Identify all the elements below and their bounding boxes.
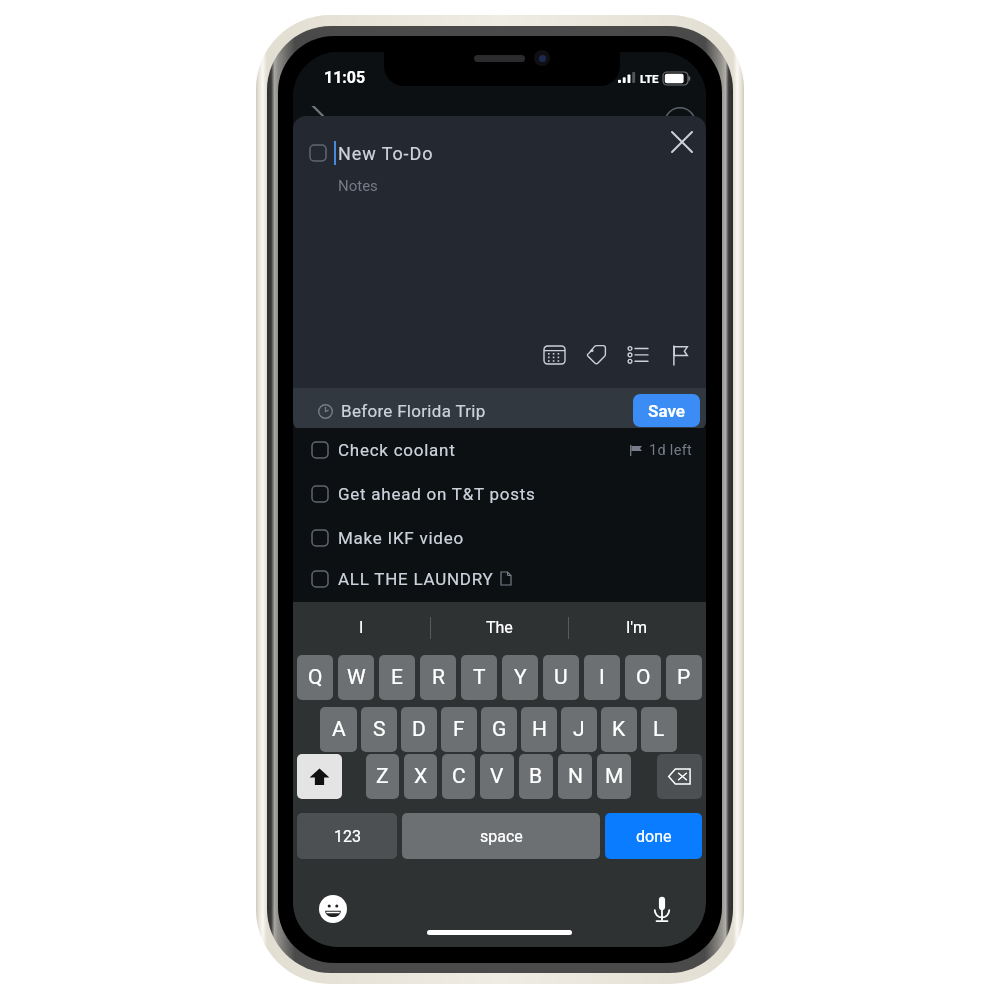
button[interactable]: N	[558, 754, 592, 799]
staticText: M	[605, 764, 624, 789]
staticText: I'm	[626, 618, 648, 637]
button[interactable]: Close	[662, 122, 702, 162]
button[interactable]: G	[481, 707, 517, 752]
staticText: O	[636, 665, 651, 690]
button[interactable]: Dictation	[647, 894, 677, 924]
button[interactable]: space	[402, 813, 600, 859]
button[interactable]: L	[641, 707, 677, 752]
button[interactable]: U	[543, 655, 579, 700]
button[interactable]: S	[361, 707, 397, 752]
button[interactable]: M	[597, 754, 631, 799]
staticText: S	[373, 717, 386, 742]
staticText: Make IKF video	[338, 528, 464, 548]
staticText: N	[568, 764, 583, 789]
staticText: W	[347, 665, 366, 690]
button[interactable]: P	[666, 655, 702, 700]
button[interactable]: Set date	[541, 342, 567, 368]
button[interactable]: I'm	[568, 602, 706, 653]
staticText: F	[453, 717, 465, 742]
staticText: B	[529, 764, 543, 789]
button[interactable]: I	[584, 655, 620, 700]
button[interactable]: K	[601, 707, 637, 752]
button[interactable]: Emoji keyboard	[318, 894, 348, 924]
staticText: A	[332, 717, 346, 742]
button[interactable]: R	[420, 655, 456, 700]
staticText: Check coolant	[338, 440, 456, 460]
staticText: Notes	[338, 177, 378, 195]
staticText: G	[492, 717, 507, 742]
staticText: 1d left	[649, 442, 693, 459]
button[interactable]: Z	[366, 754, 399, 799]
button[interactable]: O	[625, 655, 661, 700]
button[interactable]: Y	[502, 655, 538, 700]
button[interactable]: done	[605, 813, 702, 859]
staticText: J	[573, 717, 585, 742]
button[interactable]: 123	[297, 813, 397, 859]
staticText: T	[473, 665, 486, 690]
staticText: X	[414, 764, 428, 789]
button[interactable]: Check coolant	[293, 428, 706, 472]
button[interactable]: Shift	[297, 754, 342, 799]
button[interactable]: Save	[633, 394, 700, 427]
staticText: Y	[514, 665, 527, 690]
button[interactable]: Make IKF video	[293, 516, 706, 560]
button[interactable]: A	[320, 707, 357, 752]
staticText: 123	[334, 827, 361, 846]
staticText: Z	[376, 764, 389, 789]
button[interactable]: The	[430, 602, 568, 653]
button[interactable]: Flag	[667, 342, 693, 368]
button[interactable]: T	[461, 655, 497, 700]
button[interactable]: B	[519, 754, 553, 799]
staticText: R	[432, 665, 445, 690]
staticText: P	[677, 665, 691, 690]
button[interactable]: Before Florida Trip	[293, 388, 706, 433]
button[interactable]: Get ahead on T&T posts	[293, 472, 706, 516]
button[interactable]: Subtasks	[625, 342, 651, 368]
staticText: Before Florida Trip	[341, 401, 486, 421]
button[interactable]: E	[379, 655, 415, 700]
staticText: Save	[648, 401, 685, 421]
button[interactable]: Backspace	[657, 754, 702, 799]
staticText: Q	[308, 665, 323, 690]
button[interactable]: D	[401, 707, 437, 752]
button[interactable]: W	[338, 655, 374, 700]
staticText: done	[636, 827, 672, 846]
staticText: ALL THE LAUNDRY	[338, 569, 494, 589]
button[interactable]: J	[561, 707, 597, 752]
button[interactable]: Add tag	[583, 342, 609, 368]
staticText: E	[391, 665, 403, 690]
button[interactable]: ALL THE LAUNDRY	[293, 560, 706, 597]
staticText: L	[653, 717, 665, 742]
button[interactable]: C	[442, 754, 475, 799]
staticText: New To-Do	[338, 143, 434, 164]
staticText: 11:05	[324, 68, 366, 87]
button[interactable]: Q	[297, 655, 333, 700]
staticText: V	[490, 764, 504, 789]
staticText: space	[480, 827, 523, 846]
staticText: U	[554, 665, 568, 690]
button[interactable]: H	[521, 707, 557, 752]
staticText: Get ahead on T&T posts	[338, 484, 536, 504]
staticText: I	[599, 665, 605, 690]
staticText: K	[612, 717, 626, 742]
button[interactable]: I	[293, 602, 430, 653]
staticText: H	[532, 717, 547, 742]
staticText: I	[359, 618, 364, 637]
button[interactable]: X	[404, 754, 437, 799]
staticText: D	[412, 717, 426, 742]
button[interactable]: V	[480, 754, 514, 799]
staticText: C	[452, 764, 466, 789]
staticText: The	[486, 618, 513, 637]
button[interactable]: F	[441, 707, 477, 752]
staticText: LTE	[640, 72, 659, 85]
